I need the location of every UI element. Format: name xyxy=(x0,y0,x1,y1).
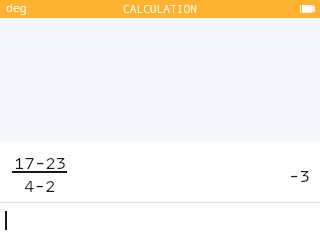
button[interactable]: deg xyxy=(6,0,27,16)
staticText: 17-23 xyxy=(14,150,67,173)
other: Battery xyxy=(299,4,316,15)
staticText: -3 xyxy=(289,163,310,186)
staticText: CALCULATION xyxy=(123,1,197,16)
staticText: 4-2 xyxy=(24,173,56,196)
